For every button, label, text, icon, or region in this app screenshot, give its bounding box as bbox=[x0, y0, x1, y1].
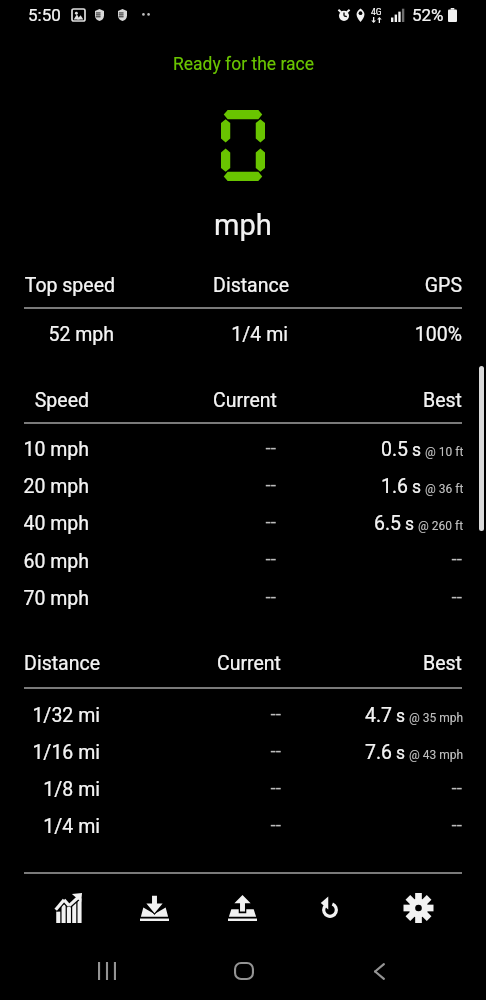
staticText: GPS bbox=[162, 274, 462, 297]
staticText: 4G bbox=[371, 7, 382, 17]
staticText: -- bbox=[0, 776, 281, 798]
staticText: 52 mph bbox=[0, 323, 114, 346]
staticText: Distance bbox=[0, 274, 289, 297]
staticText: 1/16 mi bbox=[0, 741, 100, 764]
staticText: @ 35 mph bbox=[409, 711, 464, 725]
staticText: -- bbox=[0, 739, 281, 761]
button[interactable] bbox=[0, 733, 486, 769]
staticText: @ 36 ft bbox=[425, 482, 464, 496]
button[interactable]: Statistics bbox=[24, 880, 111, 936]
staticText: Speed bbox=[0, 389, 89, 412]
button[interactable]: Export bbox=[198, 880, 286, 936]
staticText: 0.5 bbox=[381, 438, 409, 461]
button[interactable]: Import bbox=[111, 880, 198, 936]
staticText: mph bbox=[214, 208, 272, 242]
button[interactable]: Recents bbox=[83, 947, 131, 995]
staticText: -- bbox=[0, 436, 276, 458]
staticText: s bbox=[412, 440, 422, 461]
staticText: -- bbox=[0, 813, 281, 835]
staticText: -- bbox=[162, 776, 462, 798]
staticText: 7.6 bbox=[365, 741, 393, 764]
staticText: @ 260 ft bbox=[418, 519, 464, 533]
button[interactable] bbox=[0, 542, 486, 578]
button[interactable] bbox=[0, 696, 486, 732]
staticText: Top speed bbox=[0, 274, 115, 297]
staticText: s bbox=[396, 706, 406, 727]
staticText: @ 10 ft bbox=[425, 445, 464, 459]
staticText: 5:50 bbox=[28, 5, 61, 25]
button[interactable] bbox=[0, 504, 486, 540]
staticText: 52% bbox=[412, 5, 444, 25]
staticText: 1/4 mi bbox=[0, 323, 288, 346]
staticText: -- bbox=[162, 547, 462, 569]
staticText: -- bbox=[0, 547, 276, 569]
button[interactable]: Home bbox=[220, 947, 268, 995]
staticText: 4.7 bbox=[365, 704, 393, 727]
staticText: 100% bbox=[162, 323, 462, 346]
staticText: -- bbox=[0, 702, 281, 724]
button[interactable] bbox=[0, 467, 486, 503]
staticText: Best bbox=[162, 652, 462, 675]
button[interactable] bbox=[0, 770, 486, 806]
staticText: 20 mph bbox=[0, 475, 89, 498]
button[interactable] bbox=[0, 430, 486, 466]
staticText: 6.5 bbox=[374, 512, 402, 535]
staticText: Ready for the race bbox=[173, 54, 314, 75]
button[interactable] bbox=[0, 807, 486, 843]
staticText: Current bbox=[0, 652, 281, 675]
button[interactable]: Settings bbox=[374, 880, 462, 936]
staticText: -- bbox=[0, 473, 276, 495]
staticText: 60 mph bbox=[0, 550, 89, 573]
staticText: @ 43 mph bbox=[409, 748, 464, 762]
staticText: 70 mph bbox=[0, 587, 89, 610]
staticText: 1/4 mi bbox=[0, 815, 100, 838]
staticText: Current bbox=[0, 389, 277, 412]
staticText: Distance bbox=[0, 652, 100, 675]
button[interactable] bbox=[0, 579, 486, 615]
staticText: 10 mph bbox=[0, 438, 89, 461]
staticText: s bbox=[405, 514, 415, 535]
staticText: 1/8 mi bbox=[0, 778, 100, 801]
staticText: s bbox=[396, 743, 406, 764]
staticText: -- bbox=[0, 585, 276, 607]
button[interactable]: Back bbox=[355, 947, 403, 995]
staticText: s bbox=[412, 477, 422, 498]
staticText: 1.6 bbox=[381, 475, 409, 498]
staticText: 40 mph bbox=[0, 512, 89, 535]
staticText: -- bbox=[162, 585, 462, 607]
staticText: 1/32 mi bbox=[0, 704, 100, 727]
button[interactable]: Reset bbox=[286, 880, 374, 936]
staticText: Best bbox=[162, 389, 462, 412]
staticText: -- bbox=[162, 813, 462, 835]
staticText: -- bbox=[0, 510, 276, 532]
